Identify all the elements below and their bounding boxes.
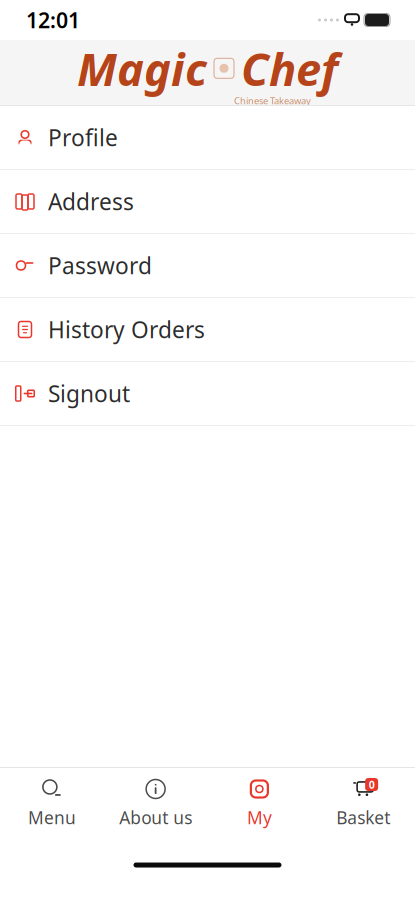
staticText: History Orders <box>48 314 205 344</box>
staticText: Address <box>48 186 134 216</box>
staticText: Chef <box>241 38 338 98</box>
staticText: Magic <box>77 38 207 98</box>
button[interactable]: Address <box>0 170 415 234</box>
button[interactable]: Menu <box>0 769 104 829</box>
button[interactable]: Password <box>0 234 415 298</box>
button[interactable]: About us <box>104 769 208 829</box>
button[interactable]: History Orders <box>0 298 415 362</box>
staticText: Menu <box>28 806 76 829</box>
staticText: Basket <box>336 806 390 829</box>
staticText: Signout <box>48 378 130 408</box>
staticText: About us <box>119 806 192 829</box>
staticText: My <box>247 806 272 829</box>
staticText: Password <box>48 250 152 280</box>
staticText: Chinese Takeaway <box>234 94 311 107</box>
button[interactable]: Basket <box>311 769 415 829</box>
staticText: 0 <box>369 777 375 792</box>
button[interactable]: My <box>207 769 311 829</box>
staticText: 12:01 <box>26 6 80 34</box>
button[interactable]: Signout <box>0 362 415 426</box>
button[interactable]: Profile <box>0 106 415 170</box>
staticText: Profile <box>48 122 118 152</box>
